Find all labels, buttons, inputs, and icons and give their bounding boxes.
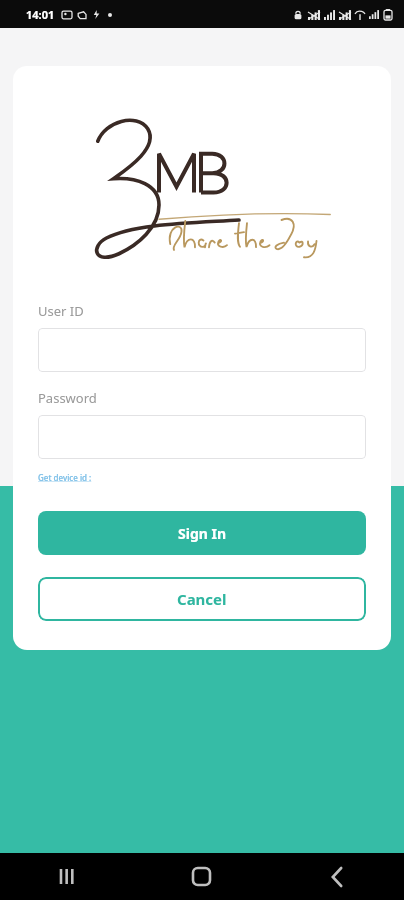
other: BMB — Share the Joy logo: [84, 110, 334, 260]
staticText: Get device id :: [38, 472, 92, 483]
staticText: User ID: [38, 302, 84, 320]
button[interactable]: Cancel: [38, 577, 366, 621]
staticText: Password: [38, 389, 97, 407]
staticText: 14:01: [26, 7, 55, 22]
button[interactable]: [38, 415, 366, 459]
button[interactable]: Recent apps: [0, 853, 134, 900]
button[interactable]: [38, 328, 366, 372]
button[interactable]: Home: [134, 853, 269, 900]
staticText: Cancel: [177, 589, 227, 609]
button[interactable]: Back: [269, 853, 404, 900]
button[interactable]: Get device id :: [38, 470, 92, 485]
staticText: Sign In: [178, 524, 227, 543]
button[interactable]: Sign In: [38, 511, 366, 555]
